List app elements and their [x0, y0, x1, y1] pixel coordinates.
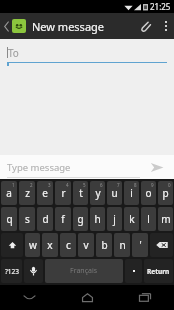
staticText: z	[25, 186, 30, 200]
button[interactable]: o	[141, 181, 156, 205]
button[interactable]: u	[107, 181, 122, 205]
staticText: f	[61, 212, 65, 226]
staticText: Return	[147, 267, 170, 276]
button[interactable]: Navigate up	[0, 13, 12, 39]
button[interactable]: a	[1, 181, 17, 205]
button[interactable]: Attach	[132, 13, 158, 39]
staticText: c	[66, 238, 71, 252]
staticText: '	[139, 238, 142, 252]
staticText: e	[42, 186, 48, 200]
staticText: k	[129, 212, 135, 226]
staticText: b	[101, 238, 108, 252]
button[interactable]: Period	[125, 259, 142, 283]
staticText: 7	[117, 182, 120, 188]
button[interactable]: t	[73, 181, 88, 205]
button[interactable]: x	[42, 233, 58, 257]
staticText: 4	[66, 182, 69, 188]
staticText: t	[79, 186, 83, 200]
button[interactable]: g	[73, 207, 88, 231]
staticText: h	[94, 212, 101, 226]
staticText: New message	[32, 19, 105, 34]
staticText: 6	[100, 182, 103, 188]
button[interactable]: v	[78, 233, 94, 257]
button[interactable]: e	[37, 181, 53, 205]
staticText: a	[6, 186, 12, 200]
staticText: v	[83, 238, 89, 252]
button[interactable]: m	[158, 207, 173, 231]
staticText: x	[47, 238, 53, 252]
staticText: 1	[12, 182, 15, 188]
staticText: 0	[168, 182, 171, 188]
button[interactable]: Home	[58, 285, 116, 310]
button[interactable]: Send	[144, 155, 170, 179]
button[interactable]: n	[114, 233, 130, 257]
staticText: 21:25	[150, 1, 171, 12]
staticText: r	[61, 186, 66, 200]
button[interactable]: s	[19, 207, 35, 231]
staticText: g	[77, 212, 84, 226]
button[interactable]: j	[107, 207, 122, 231]
button[interactable]: q	[1, 207, 17, 231]
staticText: 9	[151, 182, 154, 188]
staticText: ?123	[5, 267, 19, 276]
button[interactable]: Hide keyboard	[0, 285, 58, 310]
staticText: i	[130, 186, 133, 200]
staticText: u	[111, 186, 118, 200]
staticText: o	[145, 186, 152, 200]
staticText: p	[162, 186, 169, 200]
button[interactable]: Français	[45, 259, 123, 283]
button[interactable]: l	[141, 207, 156, 231]
button[interactable]: Voice input	[24, 259, 43, 283]
button[interactable]: i	[124, 181, 139, 205]
button[interactable]: d	[37, 207, 53, 231]
staticText: q	[6, 212, 13, 226]
button[interactable]: Symbols	[1, 259, 22, 283]
button[interactable]: k	[124, 207, 139, 231]
staticText: n	[119, 238, 126, 252]
staticText: 5	[83, 182, 86, 188]
button[interactable]: w	[25, 233, 40, 257]
staticText: l	[147, 212, 150, 226]
button[interactable]: '	[132, 233, 148, 257]
staticText: y	[95, 186, 101, 200]
staticText: m	[161, 212, 171, 226]
button[interactable]: More options	[158, 13, 174, 39]
staticText: To	[8, 46, 19, 60]
button[interactable]: Delete	[150, 233, 173, 257]
button[interactable]: Type message	[7, 155, 140, 179]
button[interactable]: p	[158, 181, 173, 205]
staticText: 8	[134, 182, 137, 188]
staticText: Français	[70, 266, 98, 276]
button[interactable]: Return	[144, 259, 173, 283]
staticText: Type message	[7, 161, 71, 174]
staticText: j	[113, 212, 116, 226]
staticText: d	[42, 212, 49, 226]
button[interactable]: y	[90, 181, 105, 205]
button[interactable]: Shift	[1, 233, 23, 257]
button[interactable]: z	[19, 181, 35, 205]
staticText: 3	[48, 182, 51, 188]
staticText: w	[29, 238, 37, 252]
button[interactable]: Recent apps	[116, 285, 174, 310]
button[interactable]: h	[90, 207, 105, 231]
button[interactable]: c	[60, 233, 76, 257]
button[interactable]: r	[55, 181, 71, 205]
button[interactable]: f	[55, 207, 71, 231]
button[interactable]: b	[96, 233, 112, 257]
staticText: 2	[30, 182, 33, 188]
staticText: s	[25, 212, 30, 226]
